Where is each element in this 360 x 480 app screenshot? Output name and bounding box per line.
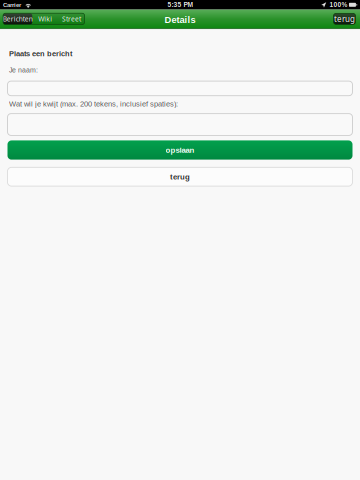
- staticText: terug: [170, 172, 190, 181]
- staticText: Wat wil je kwijt (max. 200 tekens, inclu…: [9, 100, 178, 108]
- staticText: 100%: [329, 1, 347, 8]
- staticText: terug: [334, 14, 355, 24]
- staticText: Plaats een bericht: [9, 50, 72, 58]
- staticText: Details: [164, 15, 195, 25]
- staticText: Je naam:: [9, 66, 38, 74]
- staticText: opslaan: [165, 146, 194, 154]
- button[interactable]: terug: [7, 167, 352, 186]
- button[interactable]: Street: [58, 13, 85, 25]
- staticText: Berichten: [3, 14, 33, 23]
- staticText: Street: [62, 14, 81, 23]
- staticText: 5:35 PM: [168, 1, 194, 8]
- button[interactable]: terug: [333, 13, 355, 24]
- button[interactable]: opslaan: [7, 140, 352, 160]
- button[interactable]: Wiki: [32, 13, 58, 25]
- staticText: Wiki: [38, 14, 52, 23]
- staticText: Carrier: [3, 1, 21, 8]
- button[interactable]: Berichten: [3, 13, 32, 25]
